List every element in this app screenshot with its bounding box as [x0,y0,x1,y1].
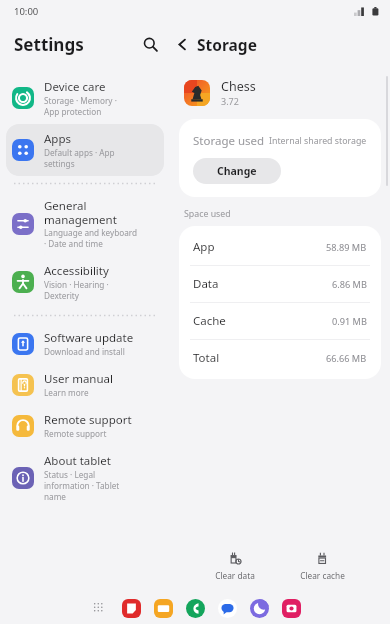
button[interactable]: Change [193,158,281,184]
button[interactable]: Phone [185,598,206,619]
staticText: General management [44,198,117,227]
button[interactable]: Accessibility [6,256,164,308]
staticText: Storage · Memory · App protection [44,95,117,117]
staticText: Cache [193,313,226,329]
staticText: Storage used [193,133,265,149]
staticText: Change [217,164,257,178]
button[interactable]: All apps [89,598,110,619]
staticText: About tablet [44,453,111,469]
staticText: Internal shared storage [269,135,367,147]
staticText: Default apps · App settings [44,147,115,169]
staticText: Total [193,350,220,366]
staticText: 3.72 [221,95,239,107]
staticText: 6.86 MB [332,278,367,291]
staticText: Device care [44,79,106,95]
button[interactable]: App [179,229,381,265]
staticText: Vision · Hearing · Dexterity [44,279,109,301]
button[interactable]: User manual [6,364,164,405]
staticText: 66.66 MB [326,352,367,365]
staticText: App [193,239,215,255]
staticText: Clear data [215,570,255,581]
staticText: 10:00 [14,5,39,18]
button[interactable]: Apps [6,124,164,176]
button[interactable]: General management [6,191,164,256]
staticText: Space used [184,208,231,220]
button[interactable]: Notes [121,598,142,619]
staticText: Software update [44,330,134,346]
button[interactable]: Search [135,29,165,59]
button[interactable]: Device care [6,72,164,124]
button[interactable]: Messages [217,598,238,619]
staticText: User manual [44,371,113,387]
button[interactable]: Software update [6,323,164,364]
button[interactable]: Clear cache [300,548,345,584]
staticText: 0.91 MB [332,315,367,328]
button[interactable]: Internet [249,598,270,619]
button[interactable]: Back [170,32,194,56]
button[interactable]: Cache [179,303,381,339]
button[interactable]: Clear data [215,548,255,584]
button[interactable]: Data [179,266,381,302]
other: Clear data [228,551,243,566]
staticText: Status · Legal information · Tablet name [44,469,120,502]
button[interactable]: Total [179,340,381,376]
staticText: Accessibility [44,263,109,279]
staticText: Settings [14,33,84,56]
button[interactable]: Gallery [281,598,302,619]
staticText: 58.89 MB [326,241,367,254]
other: Clear cache [315,551,330,566]
staticText: Remote support [44,428,107,439]
staticText: Learn more [44,387,89,398]
staticText: Data [193,276,219,292]
staticText: Clear cache [300,570,345,581]
staticText: Chess [221,78,256,95]
button[interactable]: My Files [153,598,174,619]
button[interactable]: Remote support [6,405,164,446]
staticText: Remote support [44,412,132,428]
staticText: Language and keyboard · Date and time [44,227,138,249]
staticText: Apps [44,131,72,147]
staticText: Storage [197,34,257,55]
staticText: Download and install [44,346,125,357]
button[interactable]: About tablet [6,446,164,509]
